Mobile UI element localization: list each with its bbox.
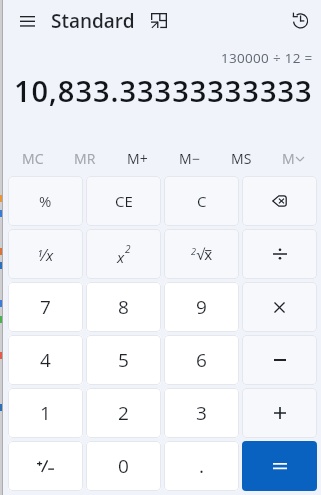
staticText: ¹ — [37, 245, 43, 265]
staticText: Standard — [51, 8, 135, 34]
staticText: 6 — [196, 347, 207, 373]
staticText: x — [117, 247, 125, 267]
button[interactable]: History — [286, 7, 314, 35]
staticText: 8 — [118, 294, 129, 320]
staticText: M — [282, 149, 295, 168]
staticText: M+ — [127, 149, 148, 168]
button[interactable]: 6 — [164, 335, 239, 385]
staticText: 2 — [191, 245, 196, 257]
staticText: 2 — [125, 242, 131, 256]
button[interactable]: MR — [59, 142, 111, 175]
staticText: . — [199, 453, 205, 479]
staticText: 10,833.33333333333 — [14, 71, 313, 110]
button[interactable]: MC — [6, 142, 59, 175]
staticText: 9 — [196, 294, 207, 320]
button[interactable]: 5 — [86, 335, 161, 385]
button[interactable]: Equals — [242, 441, 317, 491]
staticText: 0 — [118, 453, 129, 479]
staticText: 2 — [118, 400, 129, 426]
staticText: CE — [115, 191, 133, 211]
staticText: % — [39, 191, 52, 211]
button[interactable]: 8 — [86, 282, 161, 332]
button[interactable]: 9 — [164, 282, 239, 332]
staticText: MC — [22, 149, 44, 168]
button[interactable]: M+ — [111, 142, 163, 175]
staticText: 3 — [196, 400, 207, 426]
button[interactable]: M− — [163, 142, 215, 175]
button[interactable]: Backspace — [242, 176, 317, 226]
button[interactable]: Multiply — [242, 282, 317, 332]
button[interactable]: 2 — [86, 388, 161, 438]
button[interactable]: 3 — [164, 388, 239, 438]
button[interactable]: Squared — [86, 229, 161, 279]
staticText: 130000 ÷ 12 = — [221, 49, 313, 67]
button[interactable]: Square root — [164, 229, 239, 279]
button[interactable]: 7 — [8, 282, 83, 332]
button[interactable]: 1 — [8, 388, 83, 438]
button[interactable]: Keep on top — [147, 9, 171, 33]
staticText: M− — [179, 149, 200, 168]
staticText: √x̅ — [196, 244, 213, 264]
button[interactable]: Plus — [242, 388, 317, 438]
button[interactable]: 0 — [86, 441, 161, 491]
staticText: MS — [231, 149, 252, 168]
button[interactable]: One over x — [8, 229, 83, 279]
button[interactable]: Memory list — [267, 142, 319, 175]
button[interactable]: % — [8, 176, 83, 226]
staticText: 5 — [118, 347, 129, 373]
button[interactable]: CE — [86, 176, 161, 226]
button[interactable]: Open navigation — [13, 7, 41, 35]
staticText: MR — [74, 149, 96, 168]
button[interactable]: Minus — [242, 335, 317, 385]
button[interactable]: Divide — [242, 229, 317, 279]
staticText: C — [197, 191, 207, 211]
staticText: 1 — [40, 400, 51, 426]
staticText: 7 — [40, 294, 51, 320]
button[interactable]: 4 — [8, 335, 83, 385]
button[interactable]: MS — [215, 142, 267, 175]
staticText: ⁄ — [43, 243, 46, 266]
button[interactable]: C — [164, 176, 239, 226]
button[interactable]: Positive negative — [8, 441, 83, 491]
button[interactable]: . — [164, 441, 239, 491]
staticText: 4 — [40, 347, 51, 373]
staticText: x — [46, 245, 54, 265]
